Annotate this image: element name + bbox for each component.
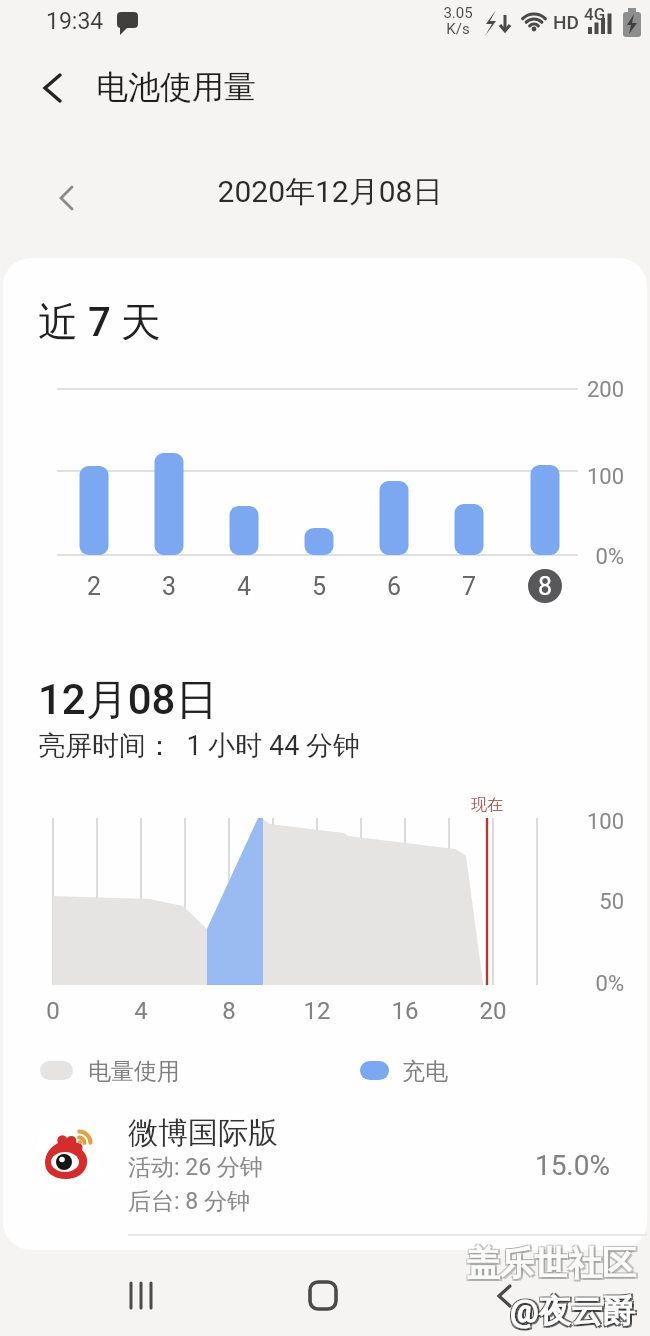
- staticText: 充电: [402, 1057, 448, 1086]
- staticText: HD: [553, 11, 579, 33]
- staticText: 电量使用: [88, 1057, 180, 1086]
- staticText: 活动: 26 分钟: [128, 1153, 263, 1182]
- staticText: 亮屏时间： 1 小时 44 分钟: [38, 729, 361, 763]
- staticText: 2020年12月08日: [5, 173, 650, 211]
- staticText: 微博国际版: [128, 1114, 278, 1152]
- staticText: 7: [449, 572, 489, 601]
- staticText: 0%: [566, 544, 624, 570]
- staticText: 0: [28, 997, 78, 1025]
- staticText: 16: [380, 997, 430, 1025]
- staticText: 19:34: [46, 8, 104, 35]
- staticText: 盖乐世社区: [465, 1241, 635, 1284]
- staticText: 盖乐世社区: [466, 1242, 636, 1285]
- staticText: 12: [292, 997, 342, 1025]
- staticText: 现在: [471, 795, 503, 815]
- staticText: 2: [74, 572, 114, 601]
- staticText: 4: [116, 997, 166, 1025]
- staticText: 盖乐世社区: [465, 1244, 635, 1287]
- staticText: 6: [374, 572, 414, 601]
- staticText: 12月08日: [38, 674, 218, 727]
- button[interactable]: [0, 176, 650, 216]
- button[interactable]: [528, 569, 562, 603]
- staticText: @夜云爵: [512, 1293, 637, 1333]
- staticText: 20: [468, 997, 518, 1025]
- staticText: @夜云爵: [509, 1293, 634, 1333]
- staticText: 200: [566, 377, 624, 403]
- staticText: 后台: 8 分钟: [128, 1187, 250, 1216]
- staticText: K/s: [436, 20, 480, 38]
- staticText: 3.05: [436, 4, 480, 22]
- staticText: 电池使用量: [96, 67, 256, 107]
- staticText: @夜云爵: [512, 1290, 637, 1330]
- staticText: 5: [299, 572, 339, 601]
- staticText: 4G: [584, 4, 606, 24]
- staticText: @夜云爵: [509, 1290, 634, 1330]
- staticText: @夜云爵: [510, 1291, 635, 1331]
- button[interactable]: [100, 1270, 180, 1330]
- button[interactable]: [20, 1112, 647, 1234]
- staticText: 近 7 天: [38, 297, 161, 347]
- staticText: 3: [149, 572, 189, 601]
- staticText: 盖乐世社区: [468, 1244, 638, 1287]
- staticText: 8: [204, 997, 254, 1025]
- staticText: 100: [566, 809, 624, 835]
- button[interactable]: [30, 62, 80, 112]
- button[interactable]: [470, 1270, 550, 1330]
- staticText: 100: [566, 464, 624, 490]
- staticText: 盖乐世社区: [468, 1241, 638, 1284]
- staticText: 50: [566, 889, 624, 915]
- staticText: 15.0%: [490, 1149, 610, 1182]
- button[interactable]: [285, 1270, 365, 1330]
- staticText: 8: [528, 572, 562, 601]
- staticText: 4: [224, 572, 264, 601]
- staticText: 0%: [566, 971, 624, 997]
